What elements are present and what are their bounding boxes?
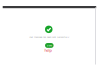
staticText: help <box>44 48 51 53</box>
button[interactable]: help <box>44 48 51 53</box>
staticText: Your message has been sent successfully <box>29 35 69 38</box>
button[interactable]: Done <box>45 43 54 48</box>
staticText: Done <box>47 44 52 47</box>
